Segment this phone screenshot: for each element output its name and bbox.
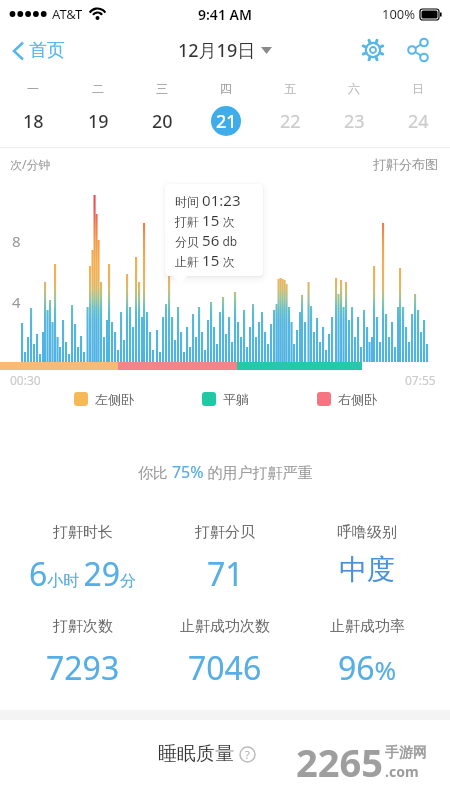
staticText: 手游网: [385, 744, 427, 762]
staticText: 平躺: [223, 391, 249, 407]
staticText: 你比 75% 的用户打鼾严重: [138, 461, 313, 483]
staticText: 止鼾 15 次: [175, 250, 235, 270]
staticText: 左侧卧: [95, 391, 134, 407]
button[interactable]: 日: [386, 81, 450, 136]
staticText: 20: [152, 109, 173, 134]
staticText: 2265: [296, 736, 383, 788]
staticText: 8: [12, 231, 21, 251]
staticText: 18: [23, 109, 44, 134]
staticText: 首页: [29, 39, 65, 62]
staticText: 12月19日: [178, 38, 256, 63]
staticText: 三: [156, 81, 168, 96]
staticText: 时间 01:23: [175, 190, 241, 210]
staticText: ?: [245, 747, 250, 762]
staticText: 22: [280, 109, 301, 134]
staticText: 07:55: [405, 372, 436, 388]
staticText: 7046: [188, 646, 262, 690]
staticText: 打鼾分贝: [195, 523, 255, 542]
button[interactable]: 五: [258, 81, 322, 136]
staticText: 24: [408, 109, 429, 134]
staticText: 睡眠质量: [158, 742, 234, 766]
button[interactable]: 二: [65, 81, 130, 136]
button[interactable]: 四: [194, 81, 258, 136]
staticText: 五: [284, 81, 296, 96]
staticText: .com: [385, 762, 419, 781]
staticText: 日: [412, 81, 424, 96]
staticText: 00:30: [10, 372, 41, 388]
staticText: 打鼾时长: [53, 523, 113, 542]
button[interactable]: 12月19日: [178, 38, 272, 63]
staticText: 9:41 AM: [198, 5, 252, 24]
staticText: 二: [92, 81, 104, 96]
button[interactable]: 一: [0, 81, 65, 136]
staticText: 19: [88, 109, 109, 134]
staticText: 21: [216, 109, 237, 134]
staticText: 呼噜级别: [337, 523, 397, 542]
staticText: 23: [344, 109, 365, 134]
button[interactable]: 六: [322, 81, 386, 136]
staticText: 7293: [46, 646, 120, 690]
button[interactable]: 首页: [12, 39, 65, 62]
staticText: 打鼾次数: [53, 617, 113, 636]
staticText: 分贝 56 db: [175, 230, 238, 250]
button[interactable]: [406, 37, 432, 63]
staticText: 中度: [339, 552, 395, 587]
button[interactable]: 睡眠质量: [158, 742, 256, 766]
staticText: 四: [220, 81, 232, 96]
staticText: 6小时 29分: [29, 552, 137, 596]
staticText: 71: [207, 552, 244, 596]
staticText: 4: [12, 292, 21, 312]
button[interactable]: 三: [130, 81, 194, 136]
staticText: 96%: [338, 646, 397, 690]
staticText: 止鼾成功率: [330, 617, 405, 636]
button[interactable]: [360, 37, 386, 63]
staticText: 右侧卧: [338, 391, 377, 407]
staticText: 打鼾分布图: [373, 156, 438, 172]
staticText: 100%: [382, 5, 416, 23]
staticText: 止鼾成功次数: [180, 617, 270, 636]
staticText: AT&T: [52, 5, 83, 23]
staticText: 次/分钟: [10, 156, 51, 172]
staticText: 一: [27, 81, 39, 96]
staticText: 打鼾 15 次: [175, 210, 235, 230]
staticText: 六: [348, 81, 360, 96]
